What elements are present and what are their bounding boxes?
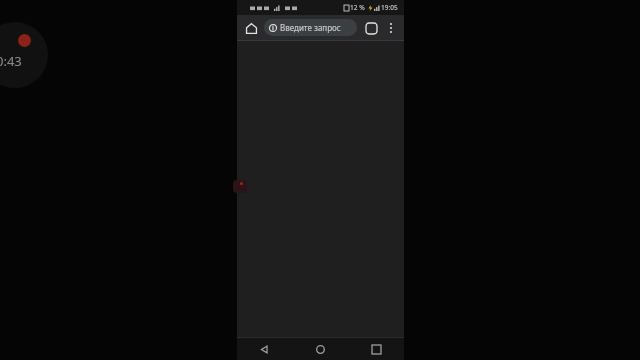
button[interactable]: Введите запрос или URL bbox=[264, 19, 357, 36]
button[interactable]: Home bbox=[241, 18, 261, 38]
button[interactable]: Back bbox=[237, 338, 292, 360]
staticText: 0:43 bbox=[0, 52, 22, 70]
button[interactable]: More options bbox=[382, 19, 400, 37]
staticText: 12 % bbox=[350, 3, 365, 12]
staticText: Введите запрос или URL bbox=[280, 22, 351, 33]
button[interactable]: Switch tabs bbox=[361, 18, 381, 38]
button[interactable]: Home bbox=[292, 338, 348, 360]
staticText: 19:05 bbox=[381, 3, 398, 12]
button[interactable]: Recent apps bbox=[348, 338, 404, 360]
